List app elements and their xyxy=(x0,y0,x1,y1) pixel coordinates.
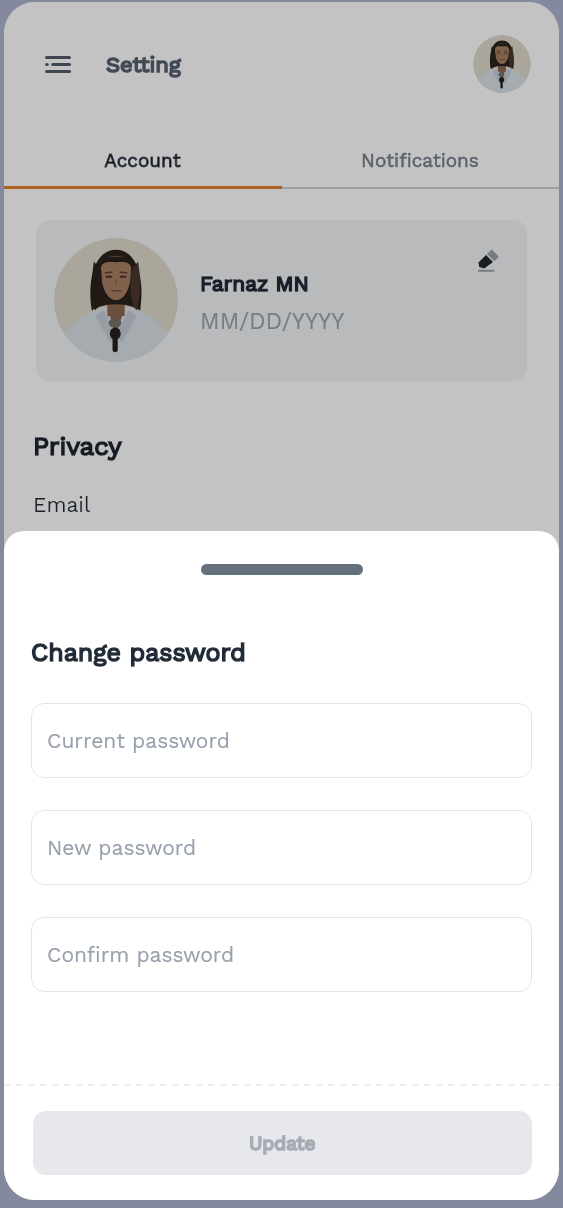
staticText: Change password xyxy=(31,638,246,667)
button[interactable]: Menu xyxy=(38,44,78,84)
staticText: Change password xyxy=(31,638,246,667)
staticText: Current password xyxy=(47,728,230,753)
staticText: Setting xyxy=(106,52,181,78)
staticText: Setting xyxy=(106,52,181,78)
button[interactable]: Notifications xyxy=(281,130,559,190)
button[interactable]: Profile xyxy=(473,35,531,93)
staticText: Privacy xyxy=(33,431,122,461)
staticText: Confirm password xyxy=(47,942,235,967)
staticText: Update xyxy=(249,1132,316,1154)
button[interactable]: Update xyxy=(33,1111,532,1175)
staticText: Farnaz MN xyxy=(200,271,309,296)
staticText: Notifications xyxy=(361,149,479,171)
staticText: Notifications xyxy=(361,149,479,171)
staticText: New password xyxy=(47,835,197,860)
staticText: Email xyxy=(33,492,91,517)
staticText: Privacy xyxy=(33,431,122,461)
staticText: MM/DD/YYYY xyxy=(200,308,345,335)
button[interactable]: Edit profile xyxy=(473,244,503,274)
staticText: Farnaz MN xyxy=(200,271,309,296)
staticText: Account xyxy=(104,149,181,171)
staticText: Account xyxy=(104,149,181,171)
button[interactable]: Confirm password xyxy=(31,917,532,992)
button[interactable]: Current password xyxy=(31,703,532,778)
staticText: Update xyxy=(249,1132,316,1154)
button[interactable]: Farnaz MN xyxy=(36,220,527,381)
button[interactable]: Account xyxy=(4,130,281,190)
button[interactable]: New password xyxy=(31,810,532,885)
staticText: farnazmn@gmail.com xyxy=(33,526,245,549)
